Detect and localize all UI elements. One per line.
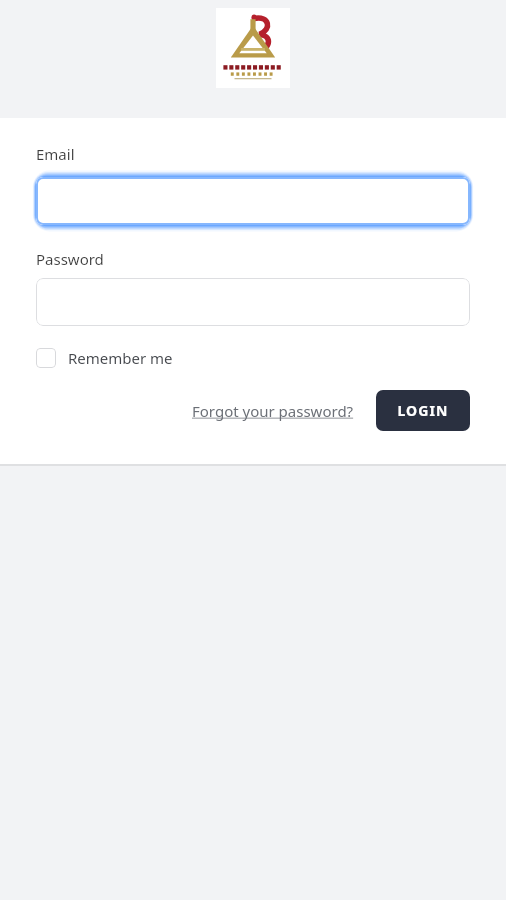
- staticText: LOGIN: [397, 401, 449, 420]
- staticText: Remember me: [68, 348, 173, 368]
- button[interactable]: Abhinandan Projects logo: [216, 8, 290, 88]
- staticText: Password: [36, 249, 104, 269]
- other: Abhinandan Projects logo: [216, 8, 290, 88]
- staticText: Email: [36, 144, 75, 164]
- button[interactable]: Remember me: [36, 348, 179, 368]
- button[interactable]: Forgot your password?: [190, 395, 356, 427]
- button[interactable]: [36, 173, 470, 229]
- button[interactable]: [36, 278, 470, 326]
- staticText: Forgot your password?: [192, 401, 354, 421]
- button[interactable]: LOGIN: [376, 390, 470, 431]
